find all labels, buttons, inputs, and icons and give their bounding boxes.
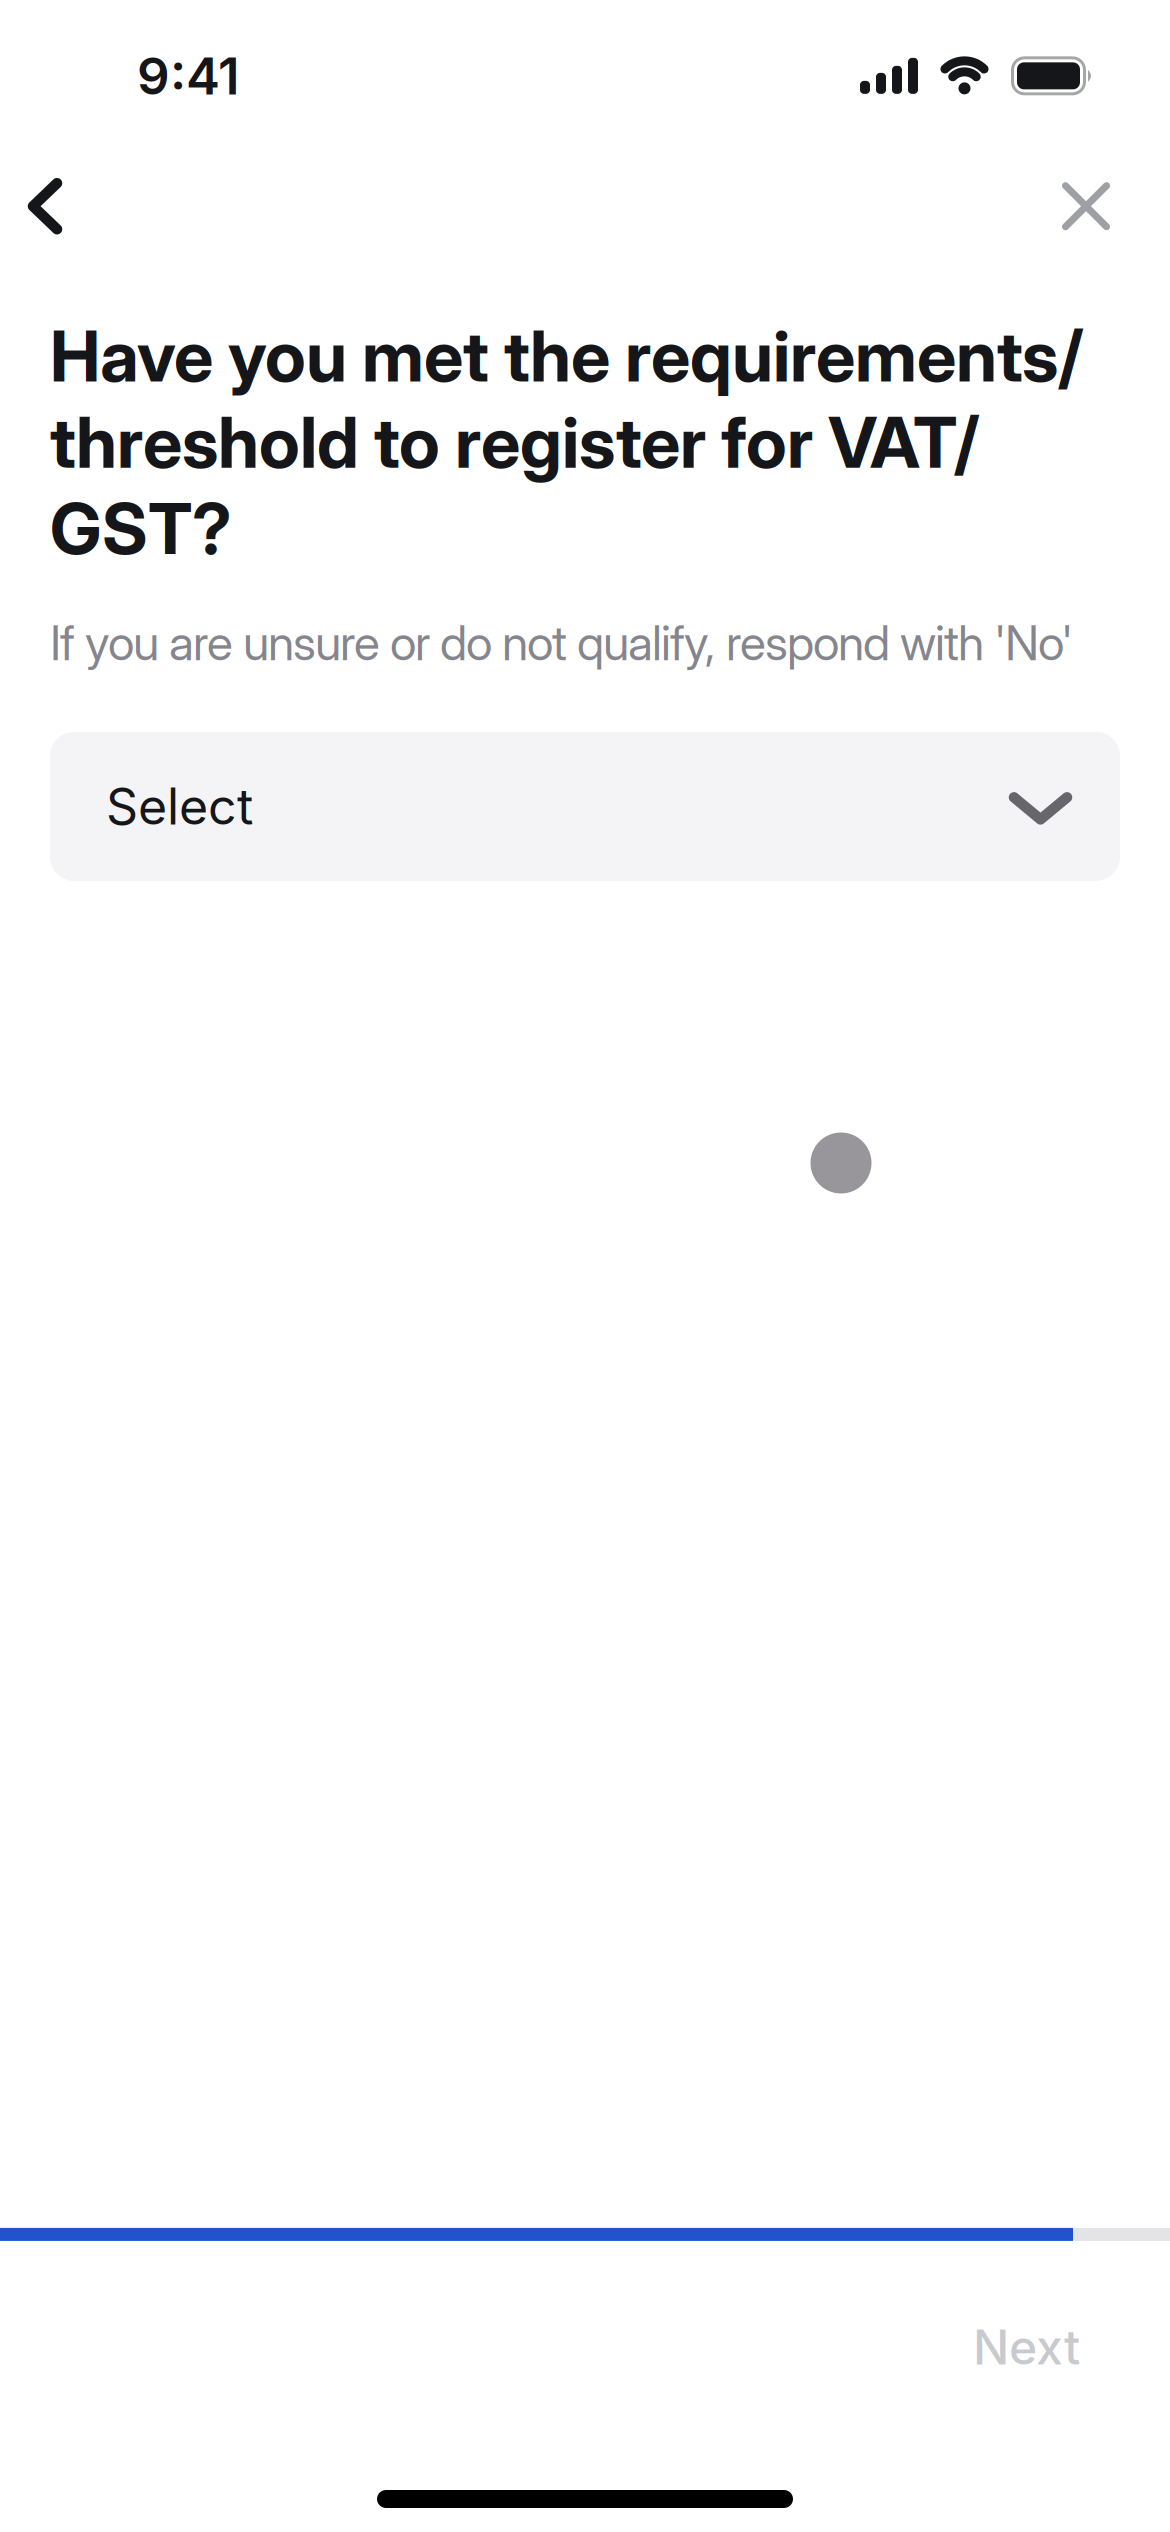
button[interactable]: Select [50, 732, 1120, 881]
staticText: Have you met the requirements/ threshold… [50, 314, 1083, 571]
button[interactable]: Next [953, 2302, 1100, 2392]
button[interactable]: Back [0, 178, 87, 235]
staticText: If you are unsure or do not qualify, res… [50, 614, 1073, 672]
staticText: Select [106, 776, 253, 837]
button[interactable]: Close [1062, 182, 1110, 230]
staticText: Next [973, 2318, 1080, 2376]
staticText: 9:41 [137, 45, 240, 107]
